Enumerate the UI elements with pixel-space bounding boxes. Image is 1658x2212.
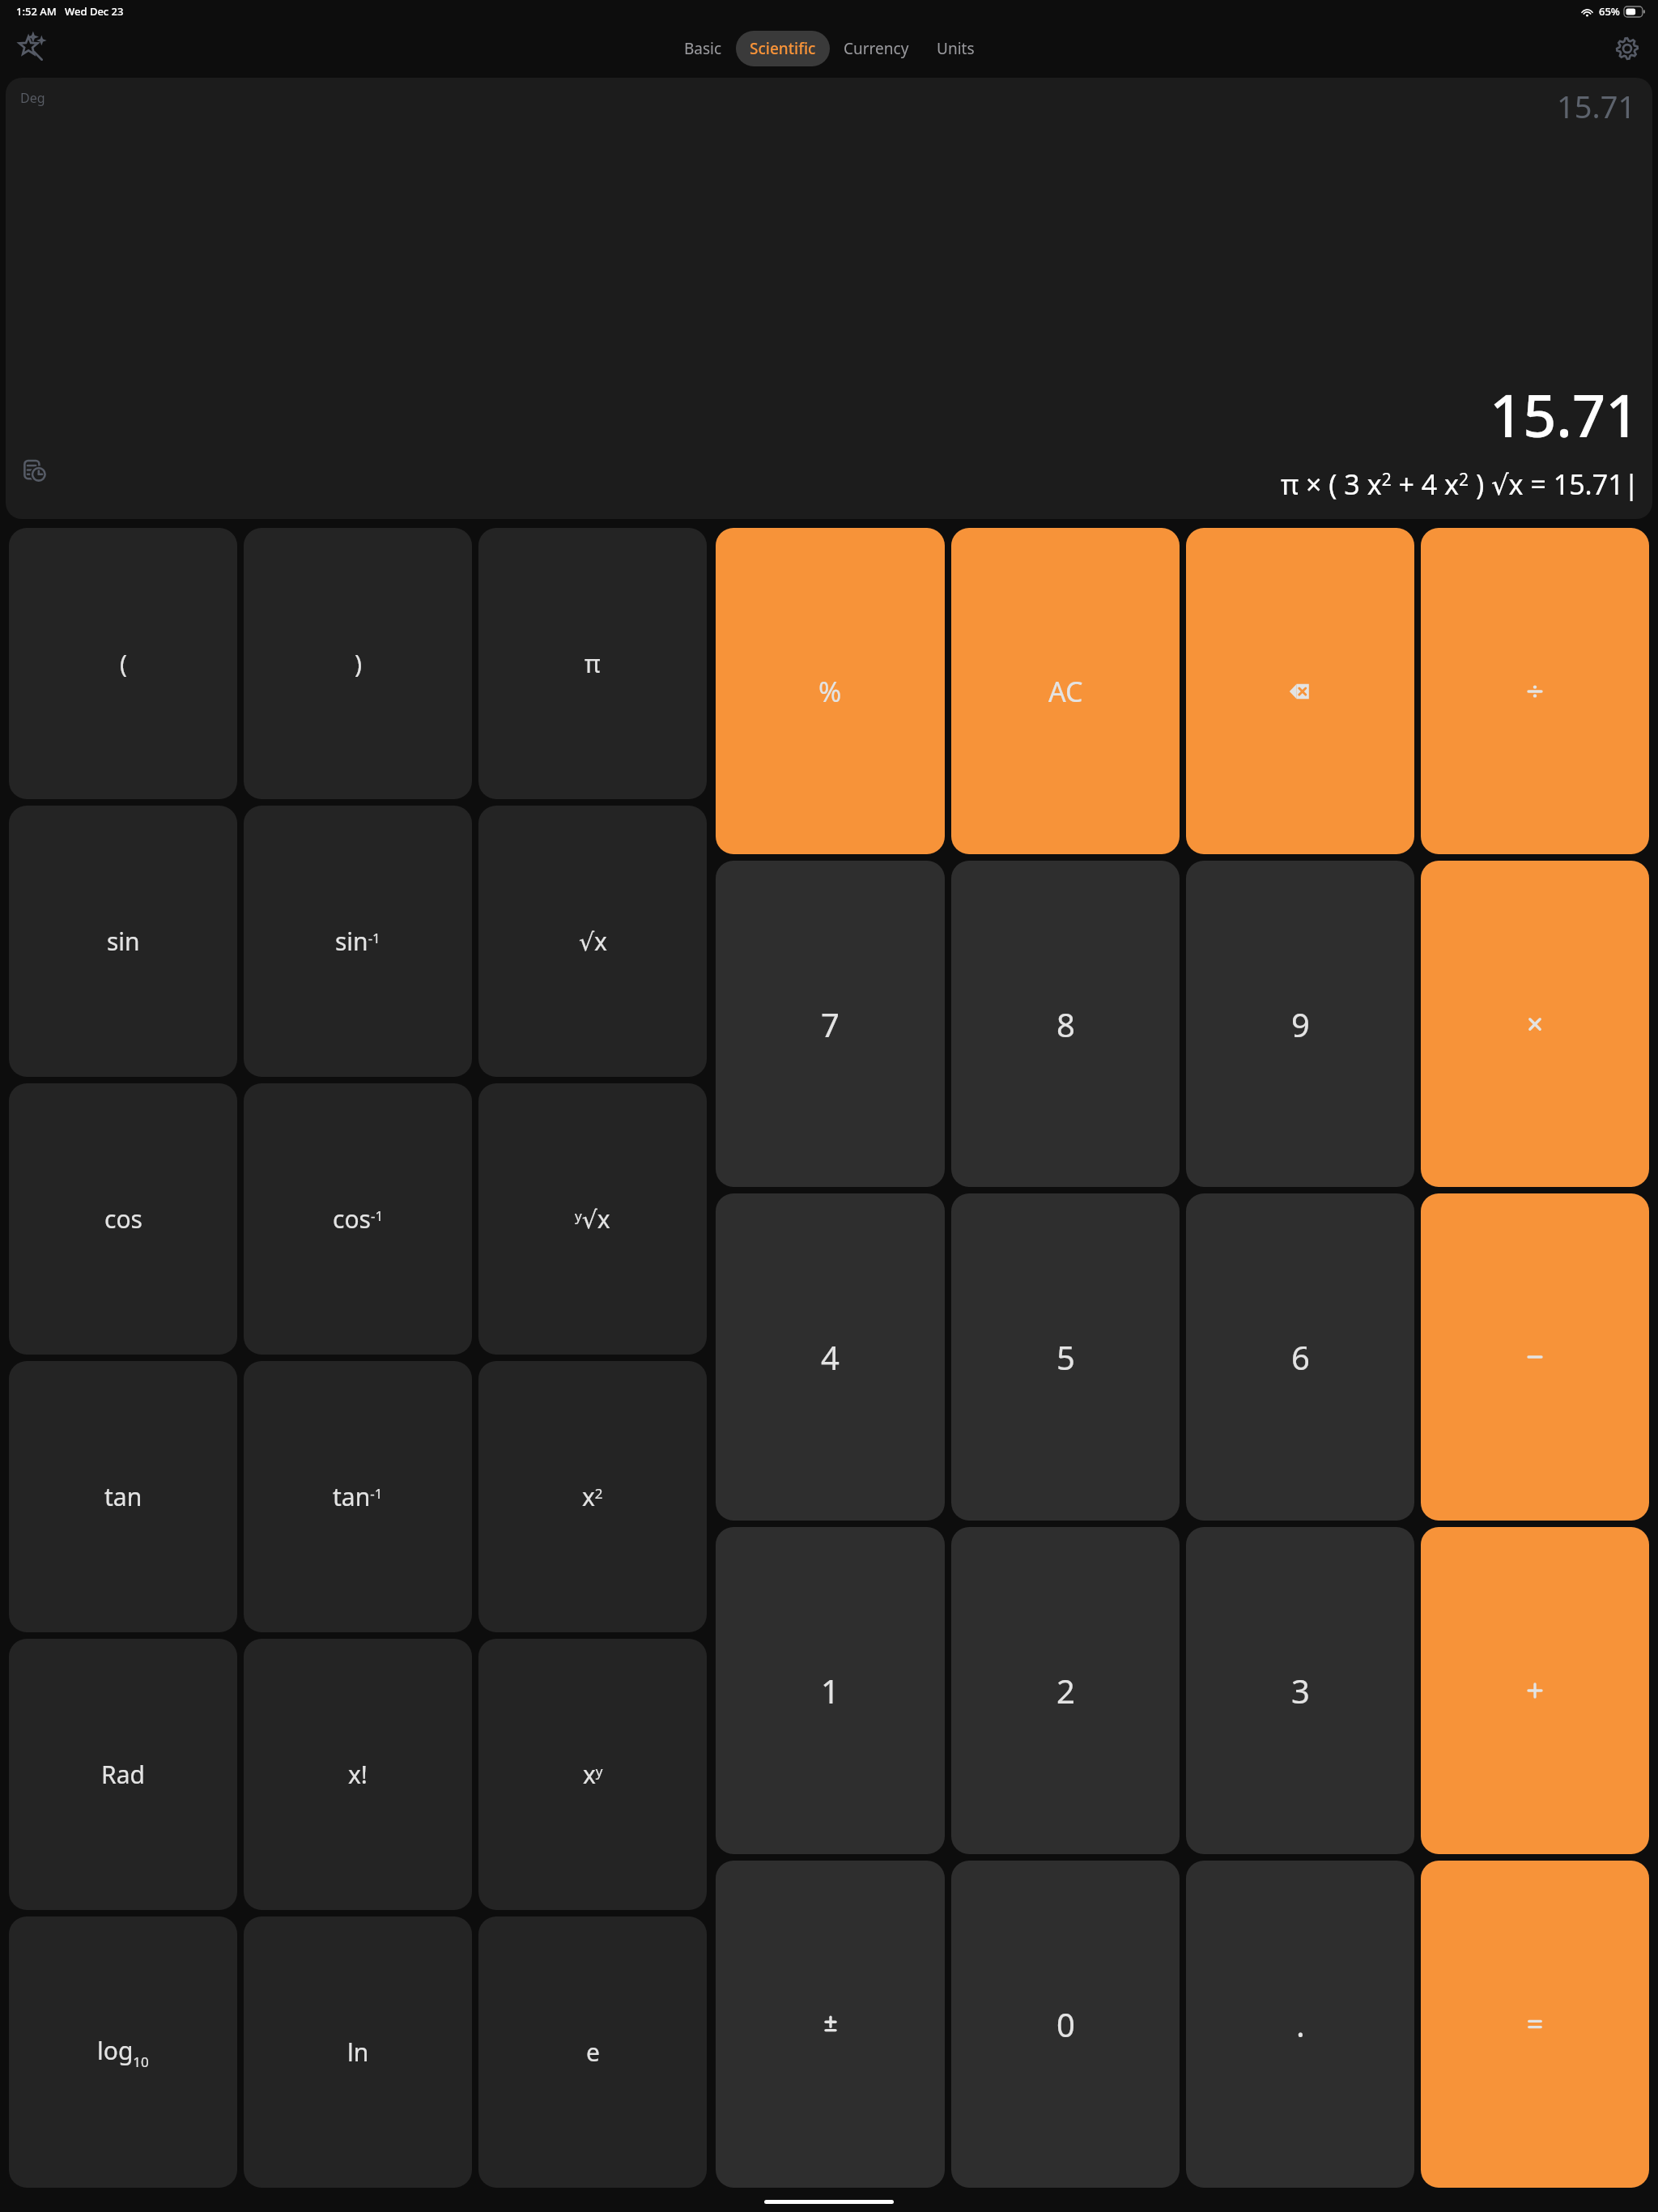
staticText: 1:52 AM — [16, 4, 57, 19]
staticText: AC — [1048, 673, 1083, 710]
button[interactable]: backspace — [1186, 528, 1414, 854]
staticText: 6 — [1291, 1335, 1310, 1379]
button[interactable]: 4 — [716, 1193, 945, 1521]
staticText: √x — [579, 925, 607, 958]
button[interactable]: tan-1 — [244, 1361, 472, 1632]
staticText: ) — [355, 647, 362, 680]
staticText: 5 — [1056, 1335, 1075, 1379]
staticText: 0 — [1056, 2002, 1075, 2046]
button[interactable]: 8 — [951, 861, 1180, 1187]
button[interactable]: sin — [9, 806, 237, 1077]
button[interactable]: e — [478, 1916, 707, 2188]
button[interactable]: History — [15, 451, 54, 490]
staticText: Basic — [684, 38, 722, 59]
button[interactable]: 5 — [951, 1193, 1180, 1521]
button[interactable]: Units — [923, 31, 988, 66]
staticText: 2 — [1056, 1669, 1075, 1712]
staticText: cos-1 — [333, 1202, 384, 1236]
button[interactable]: sin-1 — [244, 806, 472, 1077]
button[interactable]: ln — [244, 1916, 472, 2188]
staticText: . — [1296, 2002, 1305, 2046]
staticText: Deg — [20, 89, 45, 107]
staticText: Rad — [101, 1758, 145, 1791]
button[interactable]: divide — [1421, 528, 1649, 854]
staticText: π — [585, 647, 601, 680]
staticText: 7 — [821, 1002, 840, 1046]
staticText: Wed Dec 23 — [65, 4, 124, 19]
button[interactable]: % — [716, 528, 945, 854]
staticText: sin — [107, 925, 140, 958]
button[interactable]: 3 — [1186, 1527, 1414, 1854]
button[interactable]: ( — [9, 528, 237, 799]
button[interactable]: x! — [244, 1639, 472, 1910]
button[interactable]: Magic — [8, 26, 53, 71]
staticText: cos — [104, 1202, 142, 1236]
button[interactable]: . — [1186, 1861, 1414, 2188]
button[interactable]: AC — [951, 528, 1180, 854]
staticText: x2 — [582, 1480, 603, 1513]
staticText: e — [586, 2035, 600, 2069]
staticText: tan-1 — [333, 1480, 383, 1513]
button[interactable]: equals — [1421, 1861, 1649, 2188]
button[interactable]: Basic — [670, 31, 736, 66]
button[interactable]: 1 — [716, 1527, 945, 1854]
button[interactable]: ) — [244, 528, 472, 799]
staticText: y√x — [575, 1202, 610, 1236]
staticText: 15.71 — [1557, 85, 1636, 127]
staticText: 3 — [1291, 1669, 1310, 1712]
button[interactable]: multiply — [1421, 861, 1649, 1187]
staticText: xy — [583, 1758, 603, 1791]
button[interactable]: minus — [1421, 1193, 1649, 1521]
staticText: 8 — [1056, 1002, 1075, 1046]
button[interactable]: log10 — [9, 1916, 237, 2188]
button[interactable]: Currency — [830, 31, 923, 66]
staticText: 9 — [1291, 1002, 1310, 1046]
button[interactable]: 9 — [1186, 861, 1414, 1187]
staticText: 15.71 — [1490, 375, 1639, 454]
button[interactable]: Settings — [1605, 26, 1650, 71]
button[interactable]: x2 — [478, 1361, 707, 1632]
button[interactable]: 0 — [951, 1861, 1180, 2188]
button[interactable]: Scientific — [736, 31, 830, 66]
staticText: Scientific — [750, 38, 816, 59]
button[interactable]: tan — [9, 1361, 237, 1632]
staticText: ln — [347, 2035, 369, 2069]
button[interactable]: xy — [478, 1639, 707, 1910]
button[interactable]: cos — [9, 1083, 237, 1355]
staticText: π × ( 3 x2 + 4 x2 ) √x = 15.71| — [1281, 466, 1639, 503]
staticText: 65% — [1599, 4, 1620, 19]
staticText: sin-1 — [335, 925, 380, 958]
staticText: ( — [120, 647, 127, 680]
staticText: x! — [348, 1758, 368, 1791]
button[interactable]: 7 — [716, 861, 945, 1187]
staticText: % — [818, 673, 842, 710]
button[interactable]: π — [478, 528, 707, 799]
staticText: 4 — [821, 1335, 840, 1379]
button[interactable]: cos-1 — [244, 1083, 472, 1355]
button[interactable]: √x — [478, 806, 707, 1077]
button[interactable]: 2 — [951, 1527, 1180, 1854]
staticText: tan — [104, 1480, 142, 1513]
button[interactable]: Rad — [9, 1639, 237, 1910]
button[interactable]: plus — [1421, 1527, 1649, 1854]
staticText: Units — [937, 38, 975, 59]
button[interactable]: plusminus — [716, 1861, 945, 2188]
staticText: Currency — [844, 38, 909, 59]
button[interactable]: y√x — [478, 1083, 707, 1355]
staticText: log10 — [97, 2034, 149, 2071]
button[interactable]: 6 — [1186, 1193, 1414, 1521]
staticText: 1 — [821, 1669, 840, 1712]
